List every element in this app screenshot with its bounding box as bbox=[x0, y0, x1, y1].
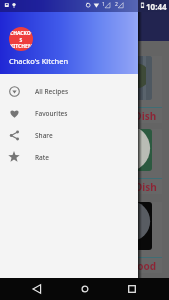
staticText: Favourites bbox=[35, 109, 68, 118]
button[interactable]: Favourites bbox=[0, 102, 138, 124]
staticText: Seafood bbox=[116, 259, 157, 273]
button[interactable]: Recents bbox=[121, 278, 143, 300]
button[interactable]: Rate bbox=[0, 146, 138, 168]
staticText: 1 bbox=[102, 1, 105, 8]
button[interactable]: Back bbox=[26, 278, 48, 300]
button[interactable]: Share bbox=[0, 124, 138, 146]
button[interactable]: Home bbox=[74, 278, 96, 300]
staticText: 10:44 bbox=[146, 1, 167, 12]
staticText: Chicken Dish bbox=[92, 109, 157, 123]
staticText: Rate bbox=[35, 153, 50, 162]
button[interactable]: All Recipes bbox=[0, 80, 138, 102]
staticText: CHACKO'S KITCHEN bbox=[9, 30, 33, 49]
staticText: 2 bbox=[115, 1, 118, 8]
staticText: Chacko's Kitchen bbox=[9, 56, 69, 66]
staticText: Share bbox=[35, 131, 53, 140]
staticText: All Recipes bbox=[35, 87, 69, 96]
staticText: Mutton Dish bbox=[95, 180, 157, 194]
